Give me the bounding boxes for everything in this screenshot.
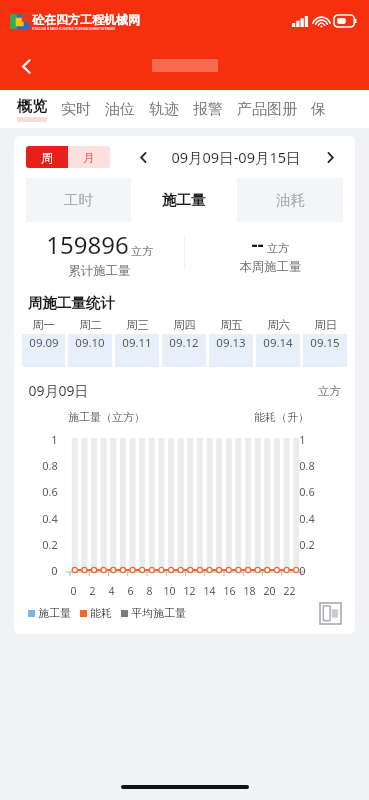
staticText: 周五 bbox=[220, 318, 243, 332]
staticText: 8 bbox=[146, 584, 153, 598]
button[interactable]: 周一 bbox=[22, 318, 65, 367]
staticText: 0.2 bbox=[299, 537, 315, 552]
staticText: 油耗 bbox=[276, 191, 305, 209]
button[interactable]: 周五 bbox=[209, 318, 253, 367]
staticText: 平均施工量 bbox=[131, 606, 186, 620]
staticText: 累计施工量 bbox=[68, 263, 131, 279]
staticText: 周二 bbox=[79, 318, 102, 332]
staticText: 工时 bbox=[64, 191, 93, 209]
staticText: 4 bbox=[108, 584, 115, 598]
staticText: TONG ZAI SI FANG CONSTRUCTION MACHINERY … bbox=[32, 27, 115, 31]
button[interactable]: 保 bbox=[304, 90, 333, 128]
staticText: 09.10 bbox=[75, 335, 105, 351]
staticText: 18 bbox=[243, 584, 256, 598]
staticText: 20 bbox=[263, 584, 276, 598]
staticText: 16 bbox=[223, 584, 236, 598]
staticText: 0.4 bbox=[42, 511, 58, 526]
staticText: 施工量 bbox=[162, 191, 206, 209]
staticText: 周四 bbox=[173, 318, 196, 332]
button[interactable]: Previous bbox=[130, 144, 156, 170]
staticText: 0.4 bbox=[299, 511, 315, 526]
staticText: 周三 bbox=[126, 318, 149, 332]
staticText: 能耗 bbox=[90, 606, 112, 620]
button[interactable]: 周日 bbox=[303, 318, 347, 367]
button[interactable]: 周 bbox=[26, 146, 68, 168]
button[interactable]: 概览 bbox=[10, 90, 54, 128]
button[interactable]: 周四 bbox=[162, 318, 206, 367]
button[interactable]: 周六 bbox=[256, 318, 300, 367]
staticText: 油位 bbox=[105, 100, 135, 119]
staticText: 0.2 bbox=[42, 537, 58, 552]
button[interactable]: Next bbox=[317, 144, 343, 170]
staticText: 周一 bbox=[32, 318, 55, 332]
staticText: 实时 bbox=[61, 100, 91, 119]
staticText: 0 bbox=[51, 563, 58, 578]
button[interactable]: 油位 bbox=[98, 90, 142, 128]
button[interactable]: 油耗 bbox=[237, 178, 343, 222]
staticText: 保 bbox=[311, 100, 326, 119]
staticText: 能耗（升） bbox=[254, 410, 309, 424]
button[interactable]: Chart type bbox=[320, 603, 341, 624]
staticText: 09.12 bbox=[169, 335, 199, 351]
staticText: 0.8 bbox=[299, 458, 315, 473]
button[interactable]: Back bbox=[6, 46, 46, 86]
button[interactable]: 产品图册 bbox=[230, 90, 304, 128]
staticText: 周 bbox=[41, 150, 53, 165]
staticText: 月 bbox=[83, 150, 95, 165]
staticText: 0 bbox=[70, 584, 77, 598]
staticText: -- bbox=[251, 231, 264, 257]
staticText: 周日 bbox=[314, 318, 337, 332]
button[interactable]: 周二 bbox=[68, 318, 112, 367]
staticText: 09月09日-09月15日 bbox=[171, 147, 301, 167]
staticText: 立方 bbox=[267, 241, 289, 255]
button[interactable]: 轨迹 bbox=[142, 90, 186, 128]
staticText: 施工量（立方） bbox=[68, 410, 145, 424]
button[interactable]: 报警 bbox=[186, 90, 230, 128]
staticText: 09.13 bbox=[216, 335, 246, 351]
staticText: 09月09日 bbox=[28, 381, 89, 400]
staticText: 14 bbox=[203, 584, 216, 598]
staticText: 报警 bbox=[193, 100, 223, 119]
staticText: 10 bbox=[163, 584, 176, 598]
staticText: 09.14 bbox=[263, 335, 293, 351]
button[interactable]: 周三 bbox=[115, 318, 159, 367]
staticText: 立方 bbox=[318, 384, 341, 398]
staticText: 12 bbox=[183, 584, 196, 598]
staticText: 概览 bbox=[17, 97, 47, 116]
staticText: 产品图册 bbox=[237, 100, 297, 119]
staticText: 0.8 bbox=[42, 458, 58, 473]
button[interactable]: 实时 bbox=[54, 90, 98, 128]
staticText: 周六 bbox=[267, 318, 290, 332]
staticText: 1 bbox=[51, 432, 58, 447]
staticText: 立方 bbox=[131, 244, 153, 258]
staticText: 09.09 bbox=[29, 335, 59, 351]
staticText: 159896 bbox=[46, 228, 129, 261]
button[interactable]: 施工量 bbox=[131, 178, 237, 222]
staticText: 0.6 bbox=[299, 484, 315, 499]
staticText: 周施工量统计 bbox=[28, 294, 115, 312]
staticText: 轨迹 bbox=[149, 100, 179, 119]
staticText: 0.6 bbox=[42, 484, 58, 499]
staticText: 砼在四方工程机械网 bbox=[32, 12, 140, 27]
staticText: 6 bbox=[127, 584, 134, 598]
staticText: 09.15 bbox=[310, 335, 340, 351]
staticText: 本周施工量 bbox=[239, 259, 302, 275]
staticText: 1 bbox=[299, 432, 306, 447]
staticText: 09.11 bbox=[122, 335, 152, 351]
staticText: 0 bbox=[299, 563, 306, 578]
button[interactable]: 工时 bbox=[26, 178, 131, 222]
staticText: 施工量 bbox=[38, 606, 71, 620]
button[interactable]: 月 bbox=[68, 146, 110, 168]
staticText: 22 bbox=[283, 584, 296, 598]
staticText: 2 bbox=[89, 584, 96, 598]
